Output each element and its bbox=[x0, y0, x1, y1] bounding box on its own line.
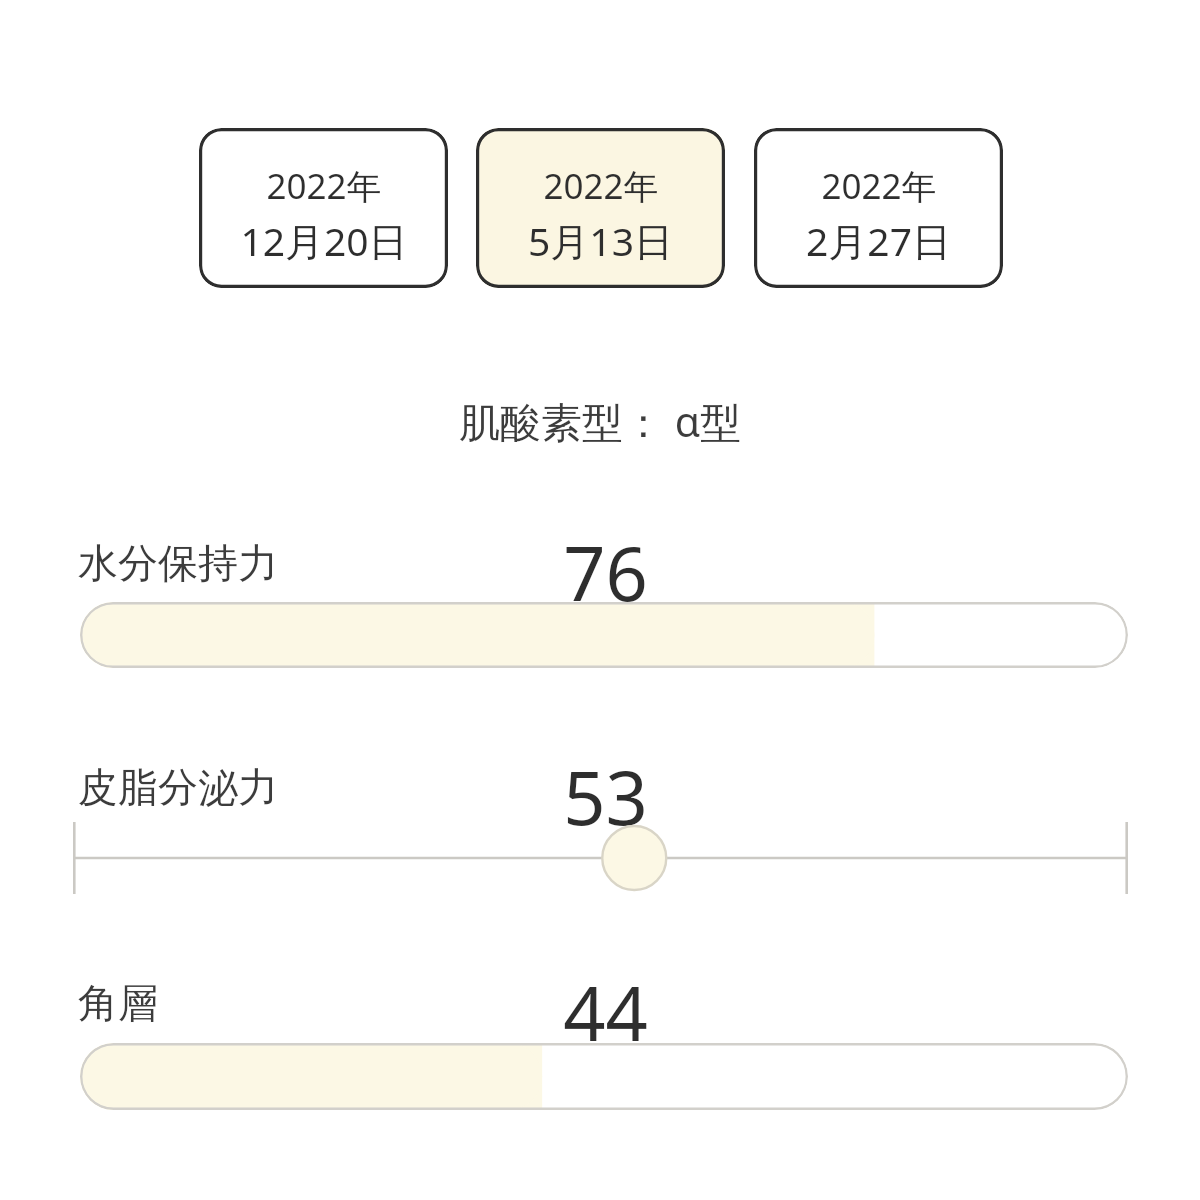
staticText: 2022年 bbox=[543, 162, 659, 210]
staticText: 水分保持力 bbox=[78, 538, 278, 588]
staticText: 2月27日 bbox=[806, 214, 951, 267]
staticText: 5月13日 bbox=[528, 214, 673, 267]
staticText: 44 bbox=[563, 962, 648, 1063]
staticText: 2022年 bbox=[821, 162, 937, 210]
button[interactable]: Sebum level slider bbox=[73, 822, 1128, 894]
staticText: 53 bbox=[563, 746, 648, 847]
button[interactable] bbox=[80, 602, 1128, 668]
staticText: 76 bbox=[563, 522, 648, 623]
staticText: 肌酸素型： α型 bbox=[459, 393, 742, 449]
button[interactable]: 2022年 bbox=[754, 128, 1003, 288]
staticText: 12月20日 bbox=[240, 214, 408, 267]
button[interactable]: 2022年 bbox=[476, 128, 725, 288]
staticText: 角層 bbox=[78, 978, 158, 1028]
button[interactable]: 2022年 bbox=[199, 128, 448, 288]
staticText: 皮脂分泌力 bbox=[78, 762, 278, 812]
button[interactable] bbox=[80, 1043, 1128, 1110]
staticText: 2022年 bbox=[266, 162, 382, 210]
